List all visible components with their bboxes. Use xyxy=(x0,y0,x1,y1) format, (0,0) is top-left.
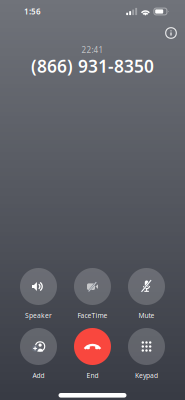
staticText: Mute xyxy=(138,311,154,320)
staticText: Speaker xyxy=(25,311,52,320)
staticText: Add xyxy=(32,371,44,380)
button[interactable]: Mute xyxy=(119,268,173,321)
staticText: Keypad xyxy=(135,371,158,380)
staticText: 1:56 xyxy=(24,6,41,17)
button[interactable]: Speaker xyxy=(11,268,65,321)
button[interactable]: End xyxy=(65,328,119,381)
button[interactable]: FaceTime xyxy=(65,268,119,321)
staticText: End xyxy=(86,371,98,380)
button[interactable]: Add xyxy=(11,328,65,381)
button[interactable]: Call details xyxy=(159,21,183,45)
staticText: 22:41 xyxy=(81,45,103,55)
staticText: FaceTime xyxy=(77,311,107,320)
staticText: (866) 931-8350 xyxy=(31,54,154,77)
button[interactable]: Keypad xyxy=(119,328,173,381)
